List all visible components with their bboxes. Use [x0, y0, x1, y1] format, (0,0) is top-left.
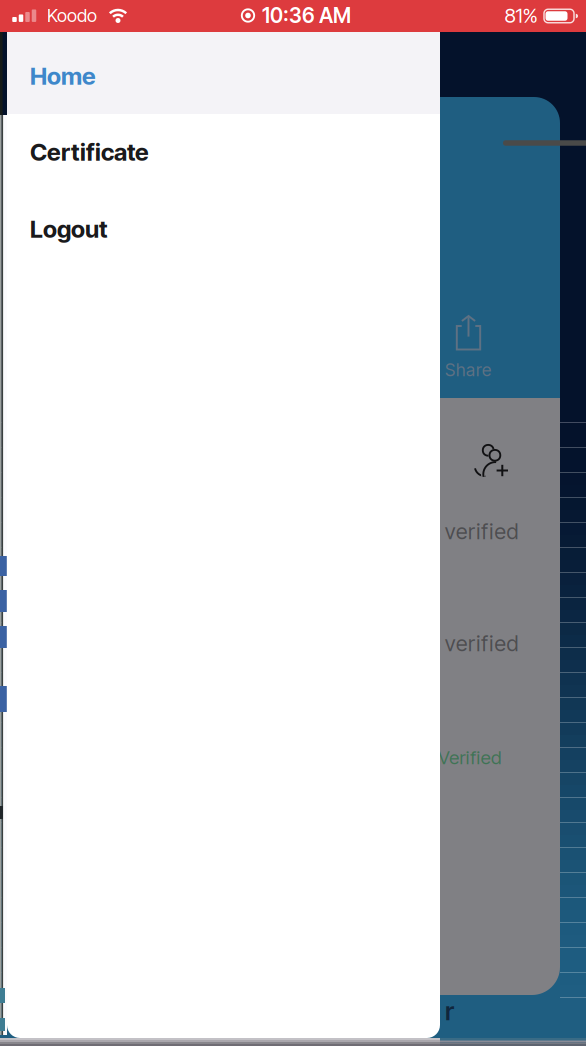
button[interactable]: Home — [7, 32, 440, 114]
staticText: Not verified — [401, 519, 519, 544]
staticText: Certificate — [30, 137, 149, 166]
staticText: 10:36 AM — [262, 3, 351, 28]
staticText: Not verified — [401, 631, 519, 656]
staticText: Koodo — [47, 5, 97, 26]
staticText: Share — [445, 359, 491, 380]
staticText: Verified — [438, 746, 501, 769]
staticText: Home — [30, 61, 96, 90]
staticText: Logout — [30, 214, 108, 243]
button[interactable]: Share — [423, 305, 513, 385]
button[interactable]: Logout — [7, 190, 440, 267]
staticText: 81% — [504, 3, 537, 28]
staticText: r — [445, 996, 454, 1026]
button[interactable]: Certificate — [7, 113, 440, 190]
